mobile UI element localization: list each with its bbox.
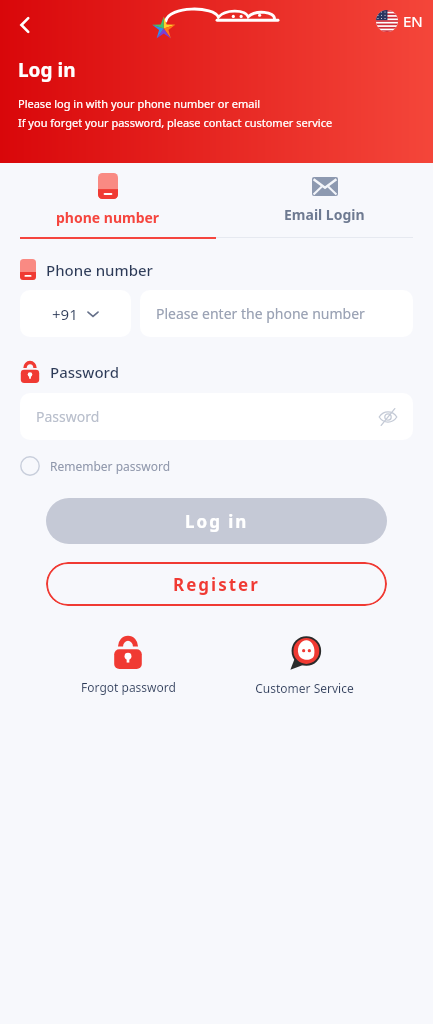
staticText: +91 xyxy=(52,304,78,324)
button[interactable]: Show password xyxy=(377,406,399,428)
staticText: Please log in with your phone number or … xyxy=(18,96,261,111)
button[interactable]: Please enter the phone number xyxy=(140,290,413,337)
staticText: Customer Service xyxy=(255,680,354,696)
staticText: Forgot password xyxy=(81,679,176,695)
button[interactable]: Back xyxy=(6,6,44,44)
button[interactable]: Customer Service xyxy=(216,636,393,696)
button[interactable]: Forgot password xyxy=(40,636,216,695)
staticText: Phone number xyxy=(46,260,153,280)
button[interactable]: Email Login xyxy=(216,163,433,237)
button[interactable]: Remember password xyxy=(20,456,171,476)
staticText: EN xyxy=(403,11,423,31)
staticText: Log in xyxy=(185,510,249,533)
button[interactable]: Log in xyxy=(46,498,387,544)
button[interactable]: EN xyxy=(376,10,423,32)
staticText: Remember password xyxy=(50,458,171,474)
button[interactable]: phone number xyxy=(0,163,216,237)
staticText: Password xyxy=(50,362,119,382)
staticText: phone number xyxy=(56,208,160,227)
staticText: If you forget your password, please cont… xyxy=(18,115,333,130)
staticText: Please enter the phone number xyxy=(156,304,365,323)
staticText: Register xyxy=(173,573,260,596)
button[interactable]: Password xyxy=(20,393,413,440)
staticText: Password xyxy=(36,407,377,426)
staticText: Email Login xyxy=(284,205,365,224)
staticText: Log in xyxy=(18,57,76,83)
button[interactable]: Register xyxy=(46,562,387,606)
button[interactable]: +91 xyxy=(20,290,131,337)
